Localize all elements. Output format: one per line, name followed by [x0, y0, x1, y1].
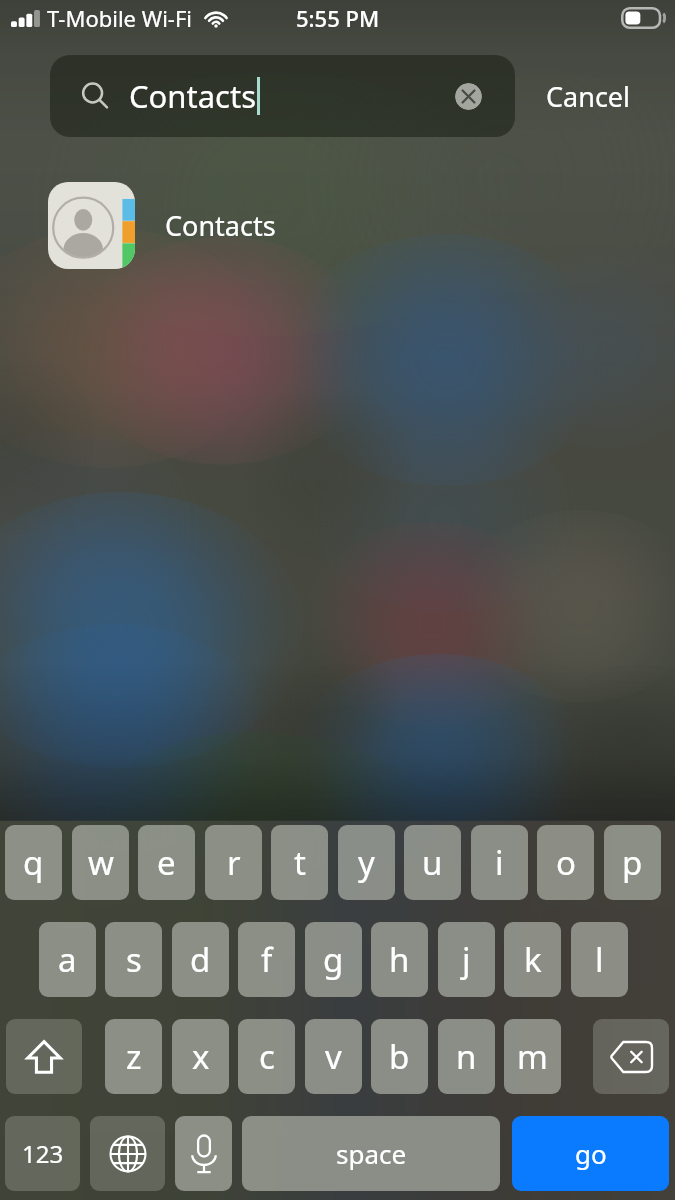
button[interactable]: x [172, 1019, 229, 1094]
button[interactable]: r [205, 825, 262, 900]
button[interactable]: z [105, 1019, 162, 1094]
staticText: g [323, 937, 344, 982]
staticText: s [126, 937, 142, 982]
staticText: space [336, 1136, 407, 1171]
button[interactable]: o [537, 825, 594, 900]
staticText: i [495, 840, 504, 885]
button[interactable]: b [371, 1019, 428, 1094]
staticText: f [261, 937, 273, 982]
staticText: a [58, 937, 77, 982]
button[interactable]: a [39, 922, 96, 997]
button[interactable]: Contacts [0, 178, 675, 272]
button[interactable]: u [404, 825, 461, 900]
staticText: 5:55 PM [296, 3, 380, 33]
button[interactable]: m [504, 1019, 561, 1094]
button[interactable]: go [512, 1116, 669, 1191]
button[interactable]: h [371, 922, 428, 997]
button[interactable]: g [305, 922, 362, 997]
staticText: l [595, 937, 604, 982]
button[interactable]: Contacts [50, 55, 515, 137]
button[interactable]: y [338, 825, 395, 900]
button[interactable]: w [72, 825, 129, 900]
staticText: o [556, 840, 576, 885]
staticText: d [190, 937, 211, 982]
button[interactable]: Dictation [175, 1116, 232, 1191]
button[interactable]: space [242, 1116, 500, 1191]
staticText: T-Mobile Wi-Fi [47, 3, 193, 33]
staticText: u [422, 840, 443, 885]
button[interactable]: n [438, 1019, 495, 1094]
staticText: z [126, 1034, 142, 1079]
staticText: b [389, 1034, 410, 1079]
staticText: Contacts [165, 207, 276, 244]
staticText: Contacts [129, 75, 257, 117]
staticText: n [456, 1034, 477, 1079]
staticText: 123 [22, 1137, 64, 1170]
button[interactable]: v [305, 1019, 362, 1094]
button[interactable]: s [105, 922, 162, 997]
button[interactable]: Switch keyboard [90, 1116, 165, 1191]
button[interactable]: Clear text [455, 83, 482, 110]
staticText: t [294, 840, 306, 885]
button[interactable]: d [172, 922, 229, 997]
staticText: q [23, 840, 44, 885]
button[interactable]: 123 [5, 1116, 80, 1191]
button[interactable]: p [604, 825, 661, 900]
staticText: j [462, 937, 471, 982]
staticText: k [524, 937, 542, 982]
button[interactable]: l [571, 922, 628, 997]
staticText: p [622, 840, 643, 885]
button[interactable]: j [438, 922, 495, 997]
button[interactable]: q [5, 825, 62, 900]
button[interactable]: k [504, 922, 561, 997]
staticText: go [575, 1136, 607, 1171]
staticText: m [517, 1034, 548, 1079]
staticText: e [157, 840, 176, 885]
staticText: y [358, 840, 375, 885]
button[interactable]: t [271, 825, 328, 900]
staticText: r [227, 840, 241, 885]
button[interactable]: i [471, 825, 528, 900]
button[interactable]: f [238, 922, 295, 997]
staticText: w [88, 840, 114, 885]
staticText: c [259, 1034, 275, 1079]
button[interactable]: Shift [6, 1019, 82, 1094]
staticText: x [192, 1034, 210, 1079]
staticText: Cancel [546, 78, 631, 115]
button[interactable]: e [138, 825, 195, 900]
button[interactable]: Backspace [593, 1019, 669, 1094]
staticText: v [325, 1034, 342, 1079]
button[interactable]: Cancel [529, 62, 648, 130]
staticText: h [389, 937, 410, 982]
button[interactable]: c [238, 1019, 295, 1094]
